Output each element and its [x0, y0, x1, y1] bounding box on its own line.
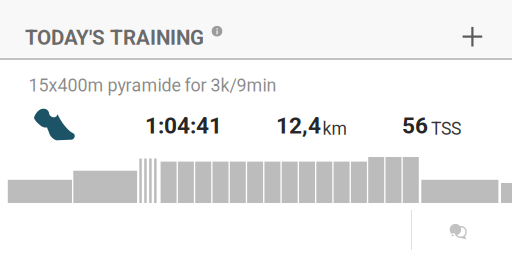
staticText: 1:04:41	[145, 112, 222, 139]
staticText: km	[322, 118, 346, 139]
button[interactable]: Comments	[408, 210, 508, 252]
staticText: 12,4	[276, 112, 321, 139]
staticText: TSS	[431, 118, 461, 139]
staticText: 15x400m pyramide for 3k/9min	[28, 75, 276, 96]
button[interactable]: Add workout	[451, 15, 495, 59]
staticText: TODAY'S TRAINING	[25, 26, 204, 50]
staticText: 56	[402, 112, 428, 139]
button[interactable]: TODAY'S TRAINING	[0, 20, 235, 54]
